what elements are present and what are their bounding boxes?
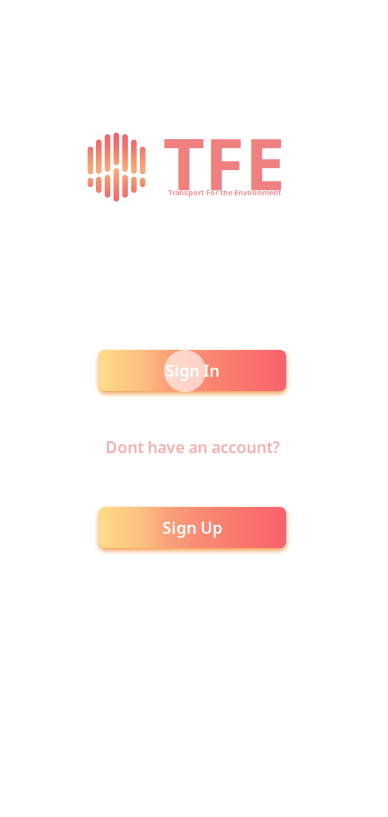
- button[interactable]: Sign Up: [99, 507, 286, 548]
- staticText: Dont have an account?: [105, 436, 279, 458]
- staticText: Sign Up: [162, 517, 222, 538]
- staticText: Transport For the Environment: [168, 187, 281, 197]
- staticText: Sign In: [165, 360, 219, 381]
- button[interactable]: Dont have an account?: [82, 432, 302, 462]
- button[interactable]: Sign In: [99, 350, 286, 391]
- staticText: TFE: [168, 118, 280, 206]
